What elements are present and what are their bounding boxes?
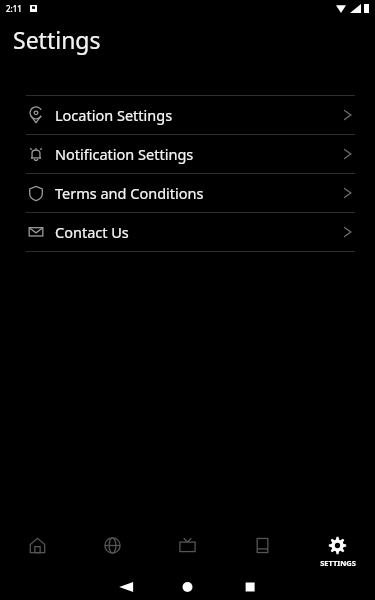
staticText: SETTINGS xyxy=(320,558,356,568)
staticText: Settings xyxy=(13,24,101,55)
button[interactable]: SETTINGS xyxy=(300,528,375,574)
button[interactable]: Guide xyxy=(225,528,300,574)
staticText: Location Settings xyxy=(55,105,343,125)
button[interactable]: Browse xyxy=(75,528,150,574)
button[interactable]: Terms and Conditions xyxy=(0,174,375,212)
staticText: 2:11 xyxy=(6,3,22,14)
staticText: Terms and Conditions xyxy=(55,183,343,203)
button[interactable]: Home xyxy=(0,528,75,574)
button[interactable]: Location Settings xyxy=(0,96,375,134)
button[interactable]: Notification Settings xyxy=(0,135,375,173)
staticText: Notification Settings xyxy=(55,144,343,164)
staticText: Contact Us xyxy=(55,222,343,242)
button[interactable]: Contact Us xyxy=(0,213,375,251)
button[interactable]: TV xyxy=(150,528,225,574)
